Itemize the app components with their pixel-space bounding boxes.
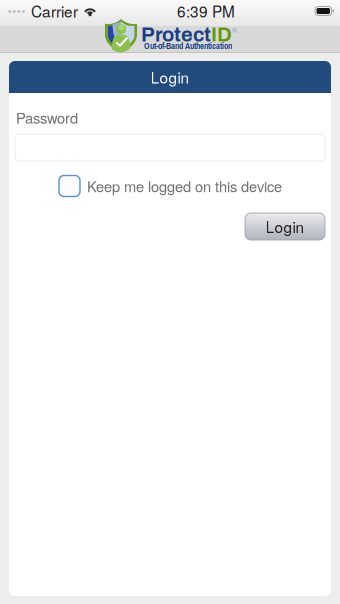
button[interactable]: Login [245, 213, 325, 240]
staticText: ID [211, 24, 232, 46]
staticText: Login [150, 66, 189, 88]
staticText: Out-of-Band Authentication [144, 40, 232, 52]
staticText: Carrier [31, 0, 78, 22]
staticText: ® [232, 25, 237, 34]
staticText: Login [265, 215, 304, 237]
staticText: Protect [141, 24, 211, 46]
button[interactable]: Keep me logged on this device [59, 175, 282, 197]
staticText: Keep me logged on this device [87, 175, 282, 196]
staticText: 6:39 PM [177, 0, 235, 22]
staticText: Password [16, 107, 78, 128]
